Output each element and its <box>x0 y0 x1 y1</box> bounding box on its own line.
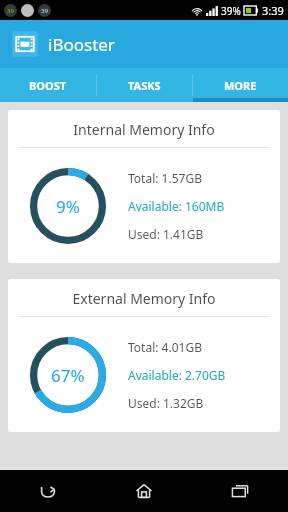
staticText: Used: 1.41GB <box>128 226 204 242</box>
staticText: Total: 4.01GB <box>128 339 202 355</box>
button[interactable]: Internal Memory Info <box>8 110 280 263</box>
staticText: 3:39 <box>262 3 284 18</box>
staticText: Available: 160MB <box>128 198 225 214</box>
button[interactable]: MORE <box>193 68 288 102</box>
staticText: iBooster <box>48 33 115 56</box>
button[interactable]: Back <box>0 470 96 512</box>
button[interactable]: Home <box>96 470 192 512</box>
staticText: Internal Memory Info <box>8 120 280 139</box>
staticText: Used: 1.32GB <box>128 395 204 411</box>
staticText: TASKS <box>128 78 161 93</box>
staticText: ABP <box>22 7 34 15</box>
staticText: 67% <box>51 364 85 387</box>
staticText: 39% <box>221 4 241 18</box>
button[interactable]: BOOST <box>0 68 96 102</box>
button[interactable]: External Memory Info <box>8 279 280 432</box>
staticText: External Memory Info <box>8 289 280 308</box>
staticText: Available: 2.70GB <box>128 367 226 383</box>
staticText: 39 <box>41 7 48 15</box>
staticText: BOOST <box>29 78 67 93</box>
staticText: 9% <box>56 195 80 218</box>
staticText: Total: 1.57GB <box>128 170 202 186</box>
other: App icon <box>12 31 38 57</box>
staticText: 39 <box>7 7 14 15</box>
staticText: MORE <box>224 78 257 93</box>
button[interactable]: TASKS <box>97 68 192 102</box>
button[interactable]: Recent apps <box>192 470 288 512</box>
